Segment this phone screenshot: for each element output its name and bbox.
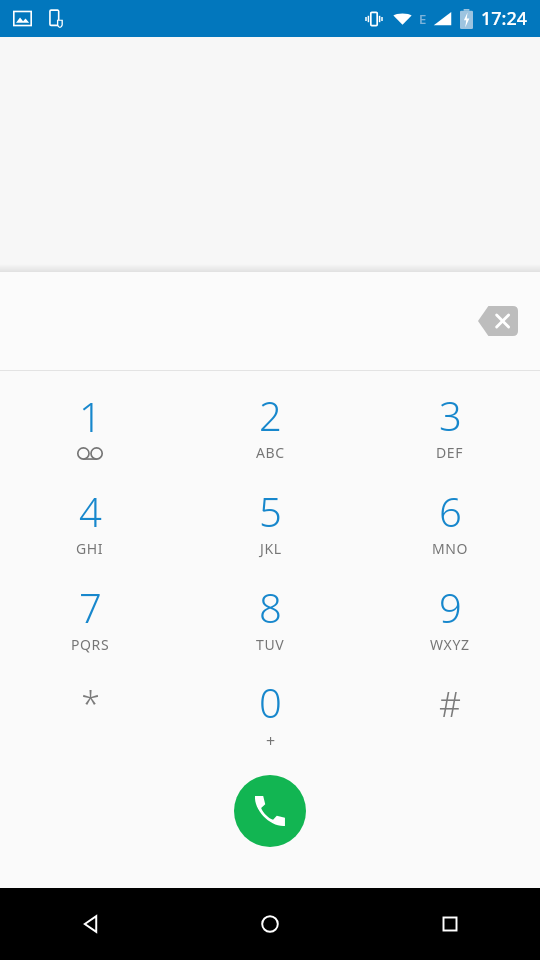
staticText: 0 (259, 675, 282, 729)
button[interactable]: 2 (180, 377, 360, 473)
staticText: 9 (439, 580, 462, 634)
staticText: JKL (260, 539, 282, 558)
staticText: MNO (432, 539, 469, 558)
staticText: 4 (79, 484, 102, 538)
button[interactable]: 6 (360, 473, 540, 569)
button[interactable]: 5 (180, 473, 360, 569)
staticText: 8 (259, 580, 282, 634)
button[interactable]: Delete (470, 295, 526, 347)
staticText: 2 (259, 388, 282, 442)
button[interactable]: Call (234, 775, 306, 847)
button[interactable]: 8 (180, 569, 360, 665)
staticText: E (419, 10, 427, 28)
staticText: TUV (256, 635, 285, 654)
staticText: 5 (259, 484, 282, 538)
staticText: PQRS (71, 635, 110, 654)
staticText: 17:24 (481, 6, 528, 31)
button[interactable]: 9 (360, 569, 540, 665)
button[interactable]: Home (180, 888, 360, 960)
staticText: WXYZ (430, 635, 470, 654)
button[interactable]: 7 (0, 569, 180, 665)
button[interactable]: 0 (180, 665, 360, 761)
button[interactable]: * (0, 665, 180, 761)
button[interactable]: # (360, 665, 540, 761)
staticText: 7 (79, 580, 102, 634)
button[interactable]: Back (0, 888, 180, 960)
button[interactable]: 4 (0, 473, 180, 569)
staticText: ABC (256, 443, 285, 462)
button[interactable]: Recent apps (360, 888, 540, 960)
staticText: * (81, 681, 100, 727)
button[interactable]: 1 (0, 377, 180, 473)
staticText: + (266, 730, 276, 752)
staticText: 6 (439, 484, 462, 538)
staticText: 1 (79, 389, 102, 443)
staticText: 3 (439, 388, 462, 442)
staticText: # (439, 681, 461, 727)
button[interactable]: 3 (360, 377, 540, 473)
staticText: GHI (76, 539, 104, 558)
staticText: DEF (436, 443, 464, 462)
